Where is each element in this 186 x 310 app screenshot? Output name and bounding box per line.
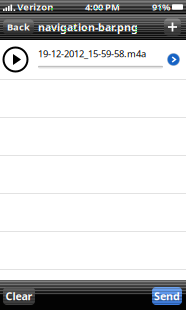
button[interactable]: Play [3, 47, 28, 72]
staticText: 4:00 PM [85, 1, 120, 13]
button[interactable]: Back [3, 19, 34, 34]
button[interactable]: Send [152, 287, 182, 305]
button[interactable]: Clear [3, 287, 35, 305]
staticText: navigation-bar.png [38, 20, 138, 34]
button[interactable]: More info [167, 53, 180, 66]
staticText: Back [7, 21, 30, 33]
staticText: Verizon [17, 1, 53, 13]
staticText: 91% [152, 1, 170, 13]
staticText: 19-12-2012_15-59-58.m4a [38, 47, 146, 60]
button[interactable]: Add [164, 18, 181, 35]
staticText: Clear [5, 289, 32, 303]
staticText: Send [154, 289, 180, 303]
